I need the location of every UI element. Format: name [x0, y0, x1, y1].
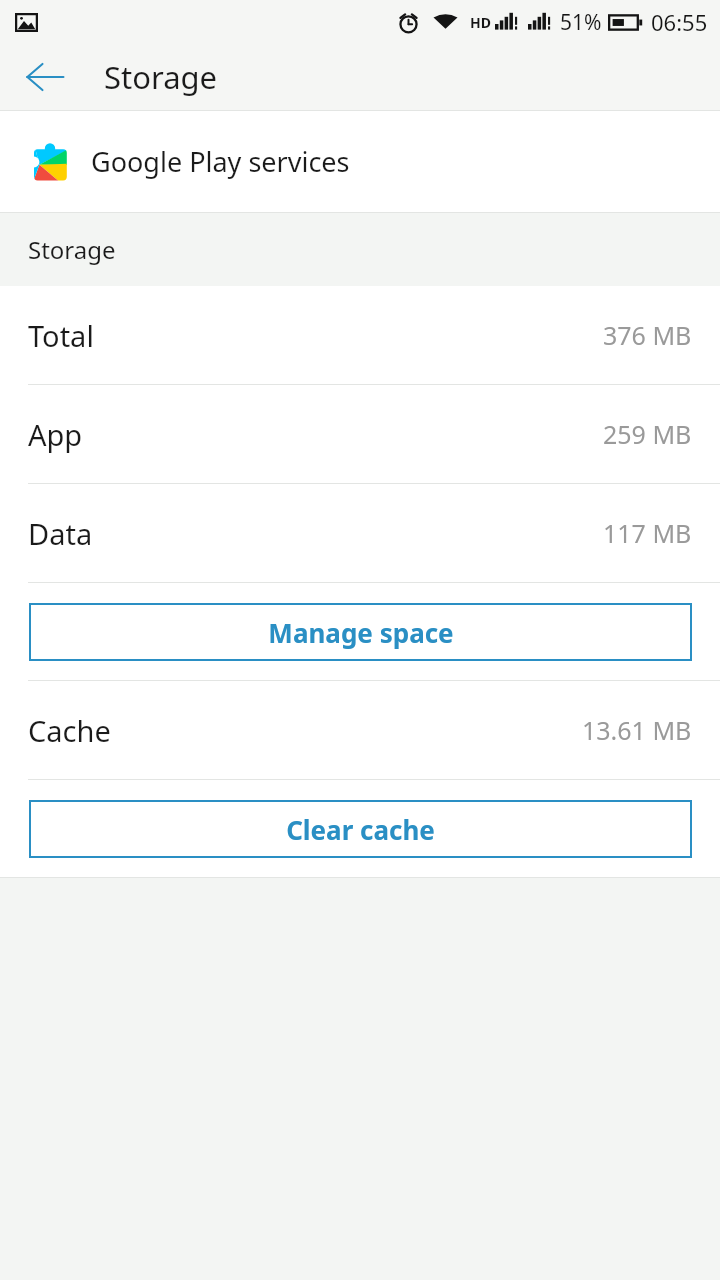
staticText: Google Play services — [91, 143, 350, 180]
staticText: Data — [28, 514, 93, 553]
button[interactable]: App — [0, 385, 720, 483]
button[interactable]: Manage space — [29, 603, 692, 661]
button[interactable]: Clear cache — [29, 800, 692, 858]
staticText: Storage — [28, 233, 116, 266]
staticText: HD — [470, 13, 491, 32]
staticText: App — [28, 415, 83, 454]
staticText: 376 MB — [603, 318, 692, 352]
staticText: 51% — [560, 8, 602, 37]
button[interactable]: Cache — [0, 681, 720, 779]
staticText: Cache — [28, 711, 111, 750]
staticText: 117 MB — [603, 516, 692, 550]
staticText: 13.61 MB — [582, 713, 692, 747]
button[interactable]: Total — [0, 286, 720, 384]
button[interactable]: Back — [16, 48, 74, 106]
button[interactable]: Google Play services — [0, 111, 720, 212]
staticText: Storage — [104, 56, 218, 98]
staticText: 259 MB — [603, 417, 692, 451]
staticText: Manage space — [268, 615, 454, 650]
button[interactable]: Data — [0, 484, 720, 582]
staticText: 06:55 — [651, 7, 708, 37]
staticText: Clear cache — [286, 812, 435, 847]
staticText: Total — [28, 316, 94, 355]
